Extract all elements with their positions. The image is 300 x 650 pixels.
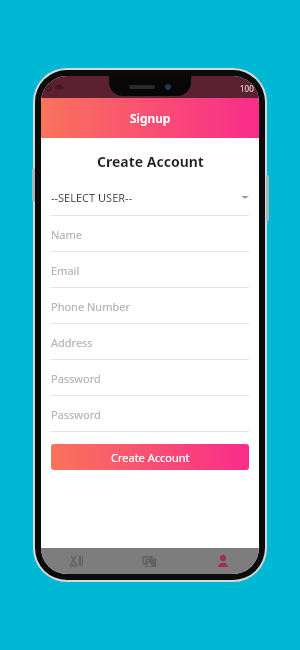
staticText: Phone Number <box>51 299 130 314</box>
button[interactable]: Email <box>51 252 249 288</box>
button[interactable]: Gallery <box>113 548 186 574</box>
button[interactable]: Password <box>51 360 249 396</box>
staticText: Address <box>51 335 93 350</box>
staticText: 100 <box>240 83 254 94</box>
button[interactable]: Services <box>41 548 113 574</box>
staticText: Name <box>51 227 83 242</box>
staticText: Password <box>51 371 101 386</box>
button[interactable]: --SELECT USER-- <box>51 185 249 216</box>
button[interactable]: Address <box>51 324 249 360</box>
button[interactable]: Password <box>51 396 249 432</box>
staticText: Create Account <box>111 450 190 465</box>
button[interactable]: Name <box>51 216 249 252</box>
staticText: Create Account <box>97 152 204 171</box>
staticText: Password <box>51 407 101 422</box>
staticText: Email <box>51 263 80 278</box>
staticText: --SELECT USER-- <box>51 190 241 205</box>
button[interactable]: Phone Number <box>51 288 249 324</box>
button[interactable]: Profile <box>186 548 259 574</box>
button[interactable]: Create Account <box>51 444 249 470</box>
staticText: Signup <box>130 110 171 126</box>
